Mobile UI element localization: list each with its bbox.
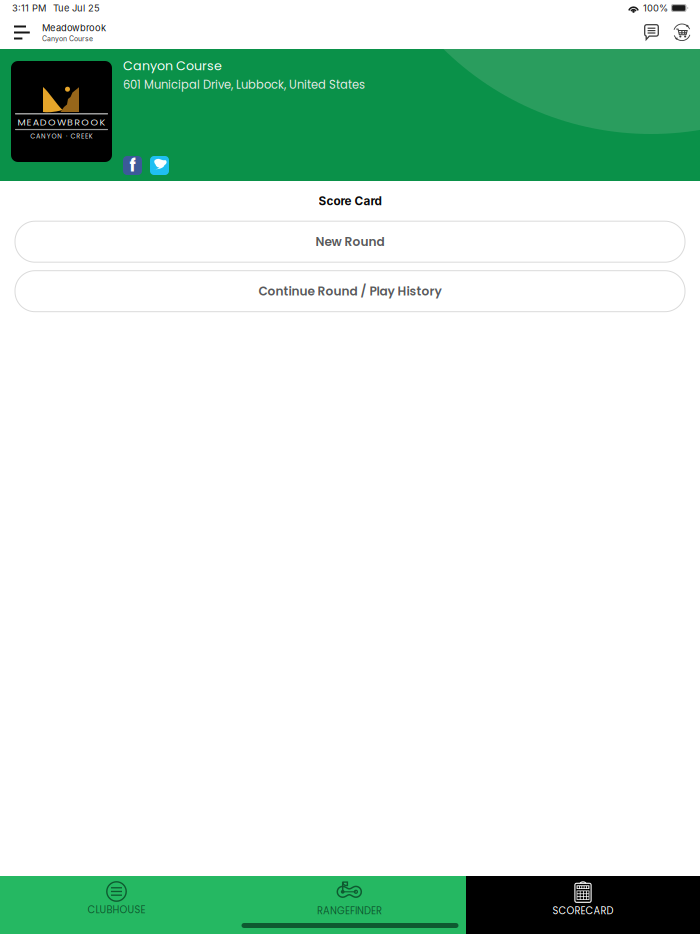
button[interactable]: Pro Shop <box>668 16 696 49</box>
staticText: 100% <box>643 2 668 14</box>
staticText: CANYON · CREEK <box>30 132 93 141</box>
staticText: 3:11 PM <box>12 2 46 14</box>
staticText: SCORECARD <box>552 904 613 918</box>
button[interactable]: Twitter <box>150 156 169 175</box>
button[interactable]: RANGEFINDER <box>233 876 466 934</box>
button[interactable]: Facebook <box>123 156 142 175</box>
staticText: 601 Municipal Drive, Lubbock, United Sta… <box>123 77 365 93</box>
button[interactable]: Messages <box>638 16 665 49</box>
button[interactable]: Continue Round / Play History <box>15 271 685 312</box>
button[interactable]: SCORECARD <box>466 876 700 934</box>
staticText: Canyon Course <box>42 34 93 43</box>
staticText: Meadowbrook <box>42 22 106 33</box>
staticText: f <box>129 153 135 178</box>
staticText: Continue Round / Play History <box>258 283 441 300</box>
button[interactable]: Menu <box>0 16 42 49</box>
staticText: Canyon Course <box>123 57 222 75</box>
staticText: CLUBHOUSE <box>87 903 145 917</box>
staticText: Tue Jul 25 <box>53 2 100 14</box>
staticText: MEADOWBROOK <box>17 115 105 129</box>
staticText: New Round <box>315 233 384 250</box>
button[interactable]: CLUBHOUSE <box>0 876 233 934</box>
staticText: RANGEFINDER <box>317 904 382 918</box>
button[interactable]: New Round <box>15 221 685 262</box>
staticText: Score Card <box>318 194 381 208</box>
